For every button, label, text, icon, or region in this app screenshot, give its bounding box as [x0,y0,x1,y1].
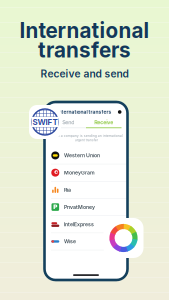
button[interactable]: Western Union [44,147,127,164]
staticText: transfers [38,37,131,62]
staticText: PrivatMoney [64,204,95,210]
staticText: Send [62,119,74,125]
staticText: Western Union [64,152,100,159]
button[interactable]: P [44,199,127,216]
button[interactable]: Receive [86,119,121,128]
staticText: Receive [94,119,113,125]
staticText: Wise [64,238,76,245]
staticText: MoneyGram [64,169,95,176]
button[interactable]: IntelExpress [44,216,127,233]
staticText: International transfers [57,109,111,115]
button[interactable]: Wise [44,233,127,250]
staticText: P [53,203,57,211]
button[interactable]: Send [50,119,86,128]
staticText: Ria [64,187,71,193]
staticText: Where a company is sending an internatio… [49,134,122,142]
button[interactable]: Close [118,110,121,114]
button[interactable]: MoneyGram [44,164,127,181]
staticText: International [19,18,149,43]
staticText: SWIFT [32,117,57,127]
staticText: IntelExpress [64,221,94,227]
button[interactable]: Ria [44,181,127,199]
staticText: Receive and send [40,67,128,80]
